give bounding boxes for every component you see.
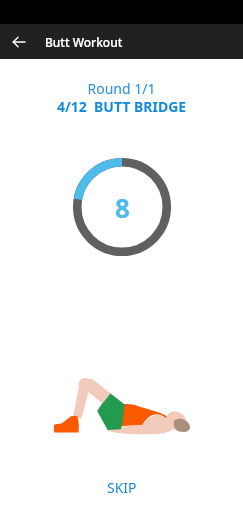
staticText: 8 — [115, 190, 130, 225]
button[interactable]: Back — [0, 24, 37, 59]
staticText: Round 1/1 — [0, 79, 243, 98]
staticText: Butt Workout — [45, 34, 123, 50]
staticText: 4/12 BUTT BRIDGE — [0, 97, 243, 116]
staticText: SKIP — [107, 478, 137, 497]
button[interactable]: SKIP — [0, 478, 243, 497]
